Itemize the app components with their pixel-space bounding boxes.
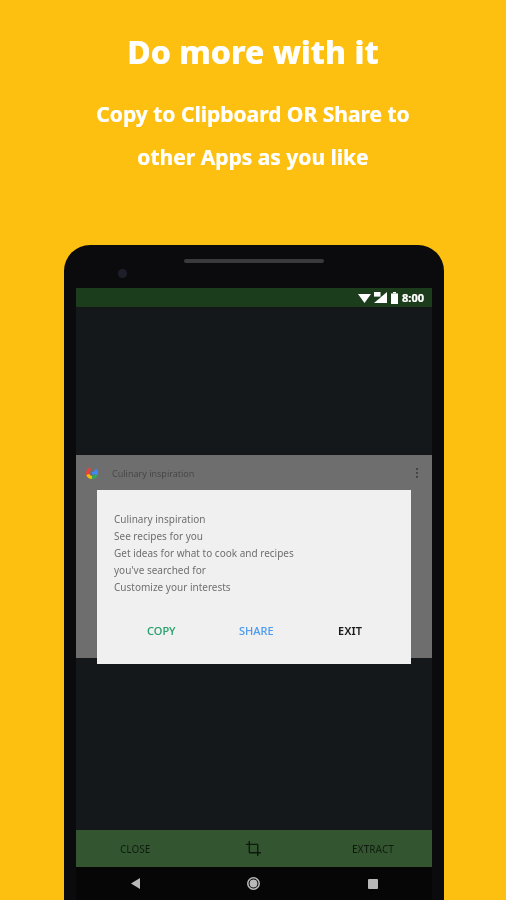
button[interactable]: CLOSE: [76, 830, 194, 867]
staticText: you've searched for: [114, 563, 206, 577]
button[interactable]: EXIT: [303, 623, 397, 638]
staticText: other Apps as you like: [137, 143, 369, 172]
staticText: Culinary inspiration: [114, 512, 206, 526]
button[interactable]: Crop: [194, 830, 313, 867]
button[interactable]: EXTRACT: [313, 830, 432, 867]
staticText: SHARE: [239, 623, 274, 638]
button[interactable]: Recent apps: [313, 867, 432, 900]
staticText: Do more with it: [127, 30, 379, 74]
staticText: Customize your interests: [114, 580, 231, 594]
button[interactable]: COPY: [114, 623, 209, 638]
button[interactable]: More options: [412, 466, 422, 480]
staticText: CLOSE: [120, 842, 151, 856]
staticText: Get ideas for what to cook and recipes: [114, 546, 294, 560]
staticText: Culinary inspiration: [112, 467, 195, 479]
staticText: EXIT: [338, 623, 363, 638]
staticText: EXTRACT: [352, 842, 394, 856]
button[interactable]: Home: [194, 867, 313, 900]
staticText: Copy to Clipboard OR Share to: [96, 100, 410, 129]
staticText: 8:00: [402, 290, 424, 305]
button[interactable]: Back: [76, 867, 194, 900]
staticText: COPY: [147, 623, 176, 638]
button[interactable]: SHARE: [209, 623, 303, 638]
staticText: See recipes for you: [114, 529, 204, 543]
